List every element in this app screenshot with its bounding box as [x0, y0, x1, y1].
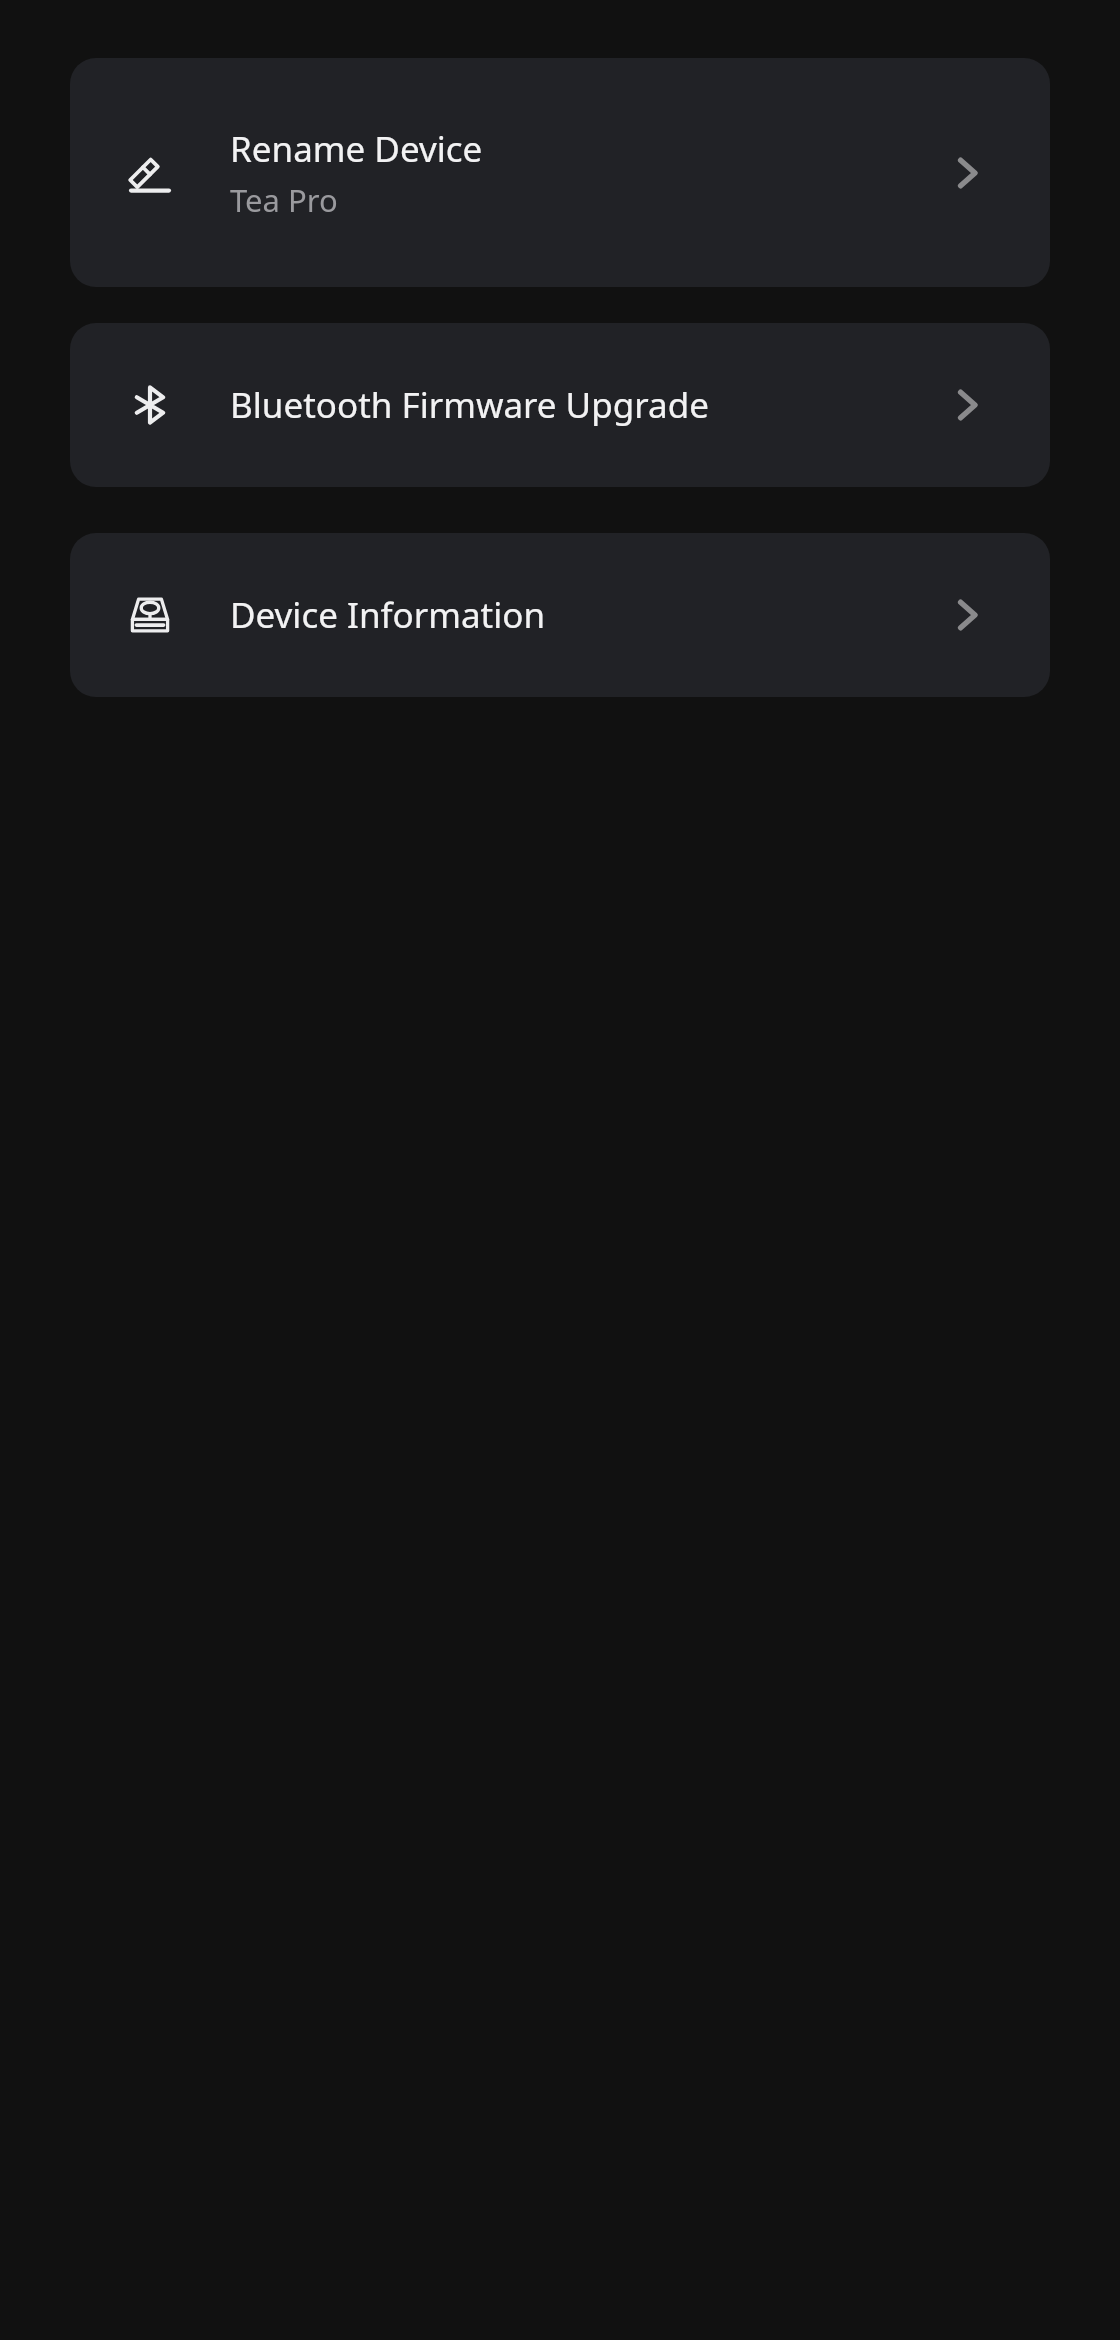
button[interactable]: Device [70, 533, 1050, 697]
button[interactable]: Bluetooth [70, 323, 1050, 487]
staticText: Device Information [230, 591, 546, 639]
other: Bluetooth [128, 383, 172, 427]
other: Device [128, 593, 172, 637]
other: Edit name [128, 151, 172, 195]
other: Bluetooth Firmware Upgrade [70, 323, 1050, 487]
staticText: Tea Pro [230, 179, 338, 221]
other: Rename Device, Tea Pro [70, 58, 1050, 287]
button[interactable]: Edit name [70, 58, 1050, 287]
staticText: Rename Device [230, 125, 483, 173]
other: Device Information [70, 533, 1050, 697]
staticText: Bluetooth Firmware Upgrade [230, 381, 709, 429]
